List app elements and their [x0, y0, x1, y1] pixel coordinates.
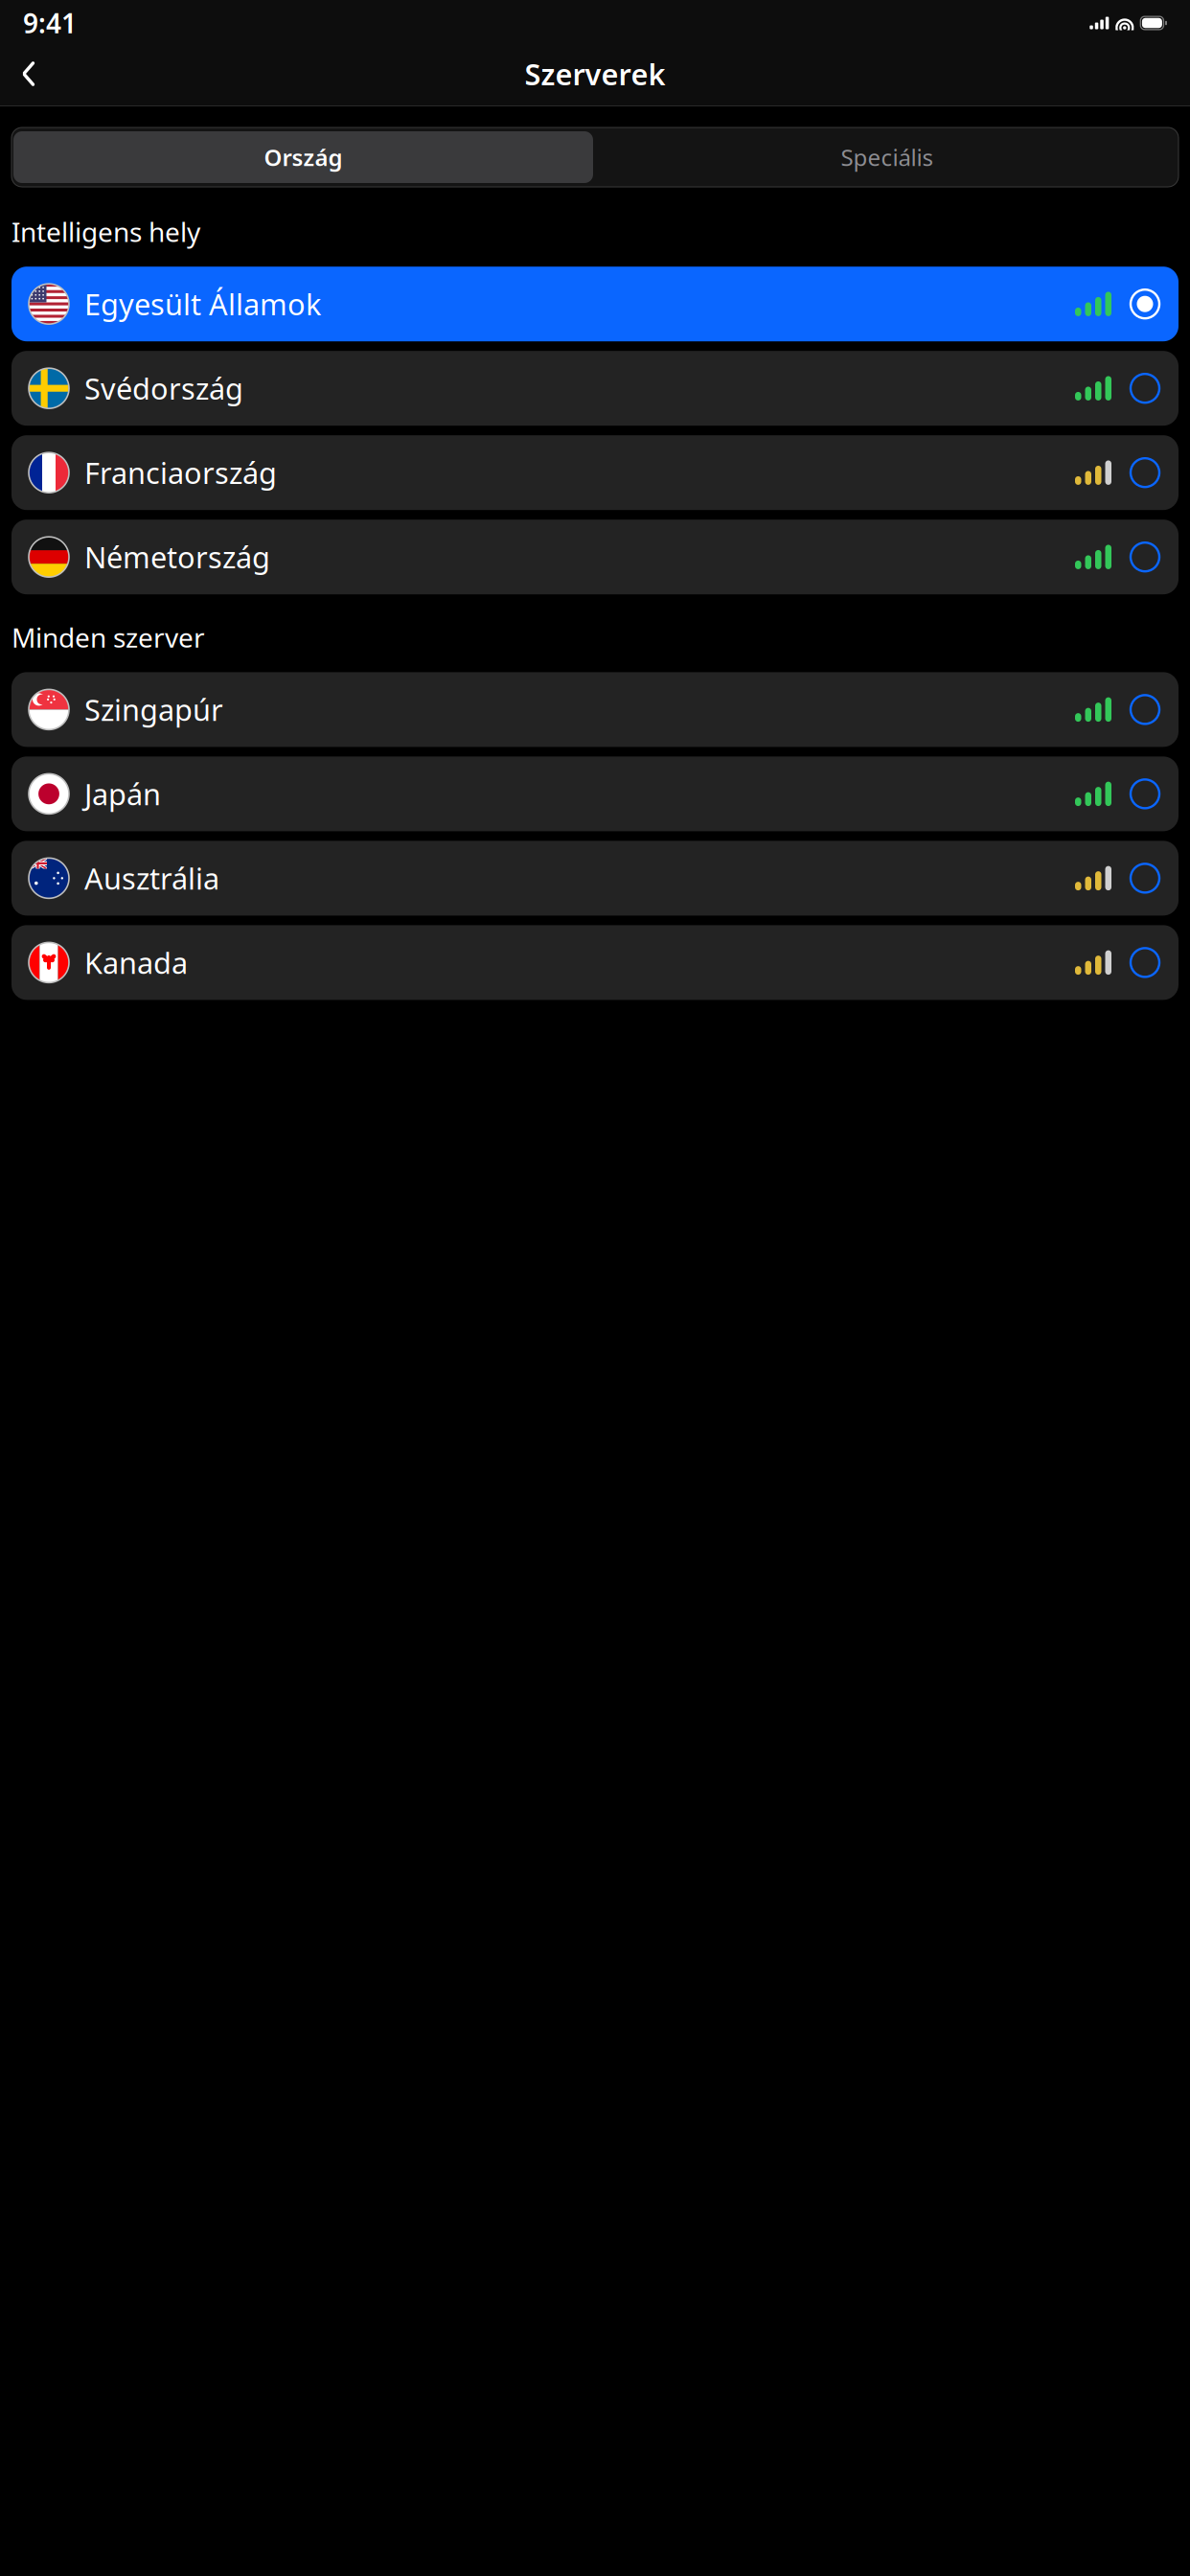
button[interactable]: Egyesült Államok: [11, 267, 1179, 341]
button[interactable]: Vissza: [8, 53, 50, 95]
button[interactable]: Speciális: [595, 129, 1179, 185]
staticText: Minden szerver: [11, 619, 205, 655]
staticText: Szerverek: [525, 54, 665, 93]
staticText: Intelligens hely: [11, 214, 200, 249]
button[interactable]: Németország: [11, 520, 1179, 594]
staticText: Svédország: [84, 369, 243, 408]
button[interactable]: Kanada: [11, 925, 1179, 1000]
button[interactable]: Franciaország: [11, 435, 1179, 510]
staticText: Ausztrália: [84, 859, 219, 898]
staticText: Japán: [84, 774, 161, 813]
staticText: Németország: [84, 537, 270, 576]
button[interactable]: Svédország: [11, 351, 1179, 426]
button[interactable]: Ausztrália: [11, 841, 1179, 916]
staticText: Speciális: [841, 142, 933, 172]
staticText: Franciaország: [84, 453, 277, 492]
button[interactable]: Ország: [11, 129, 595, 185]
button[interactable]: Japán: [11, 757, 1179, 831]
staticText: Kanada: [84, 943, 188, 982]
staticText: Egyesült Államok: [84, 284, 321, 323]
staticText: Ország: [264, 142, 343, 172]
staticText: 9:41: [23, 5, 77, 41]
staticText: Szingapúr: [84, 690, 223, 729]
button[interactable]: Szingapúr: [11, 672, 1179, 747]
